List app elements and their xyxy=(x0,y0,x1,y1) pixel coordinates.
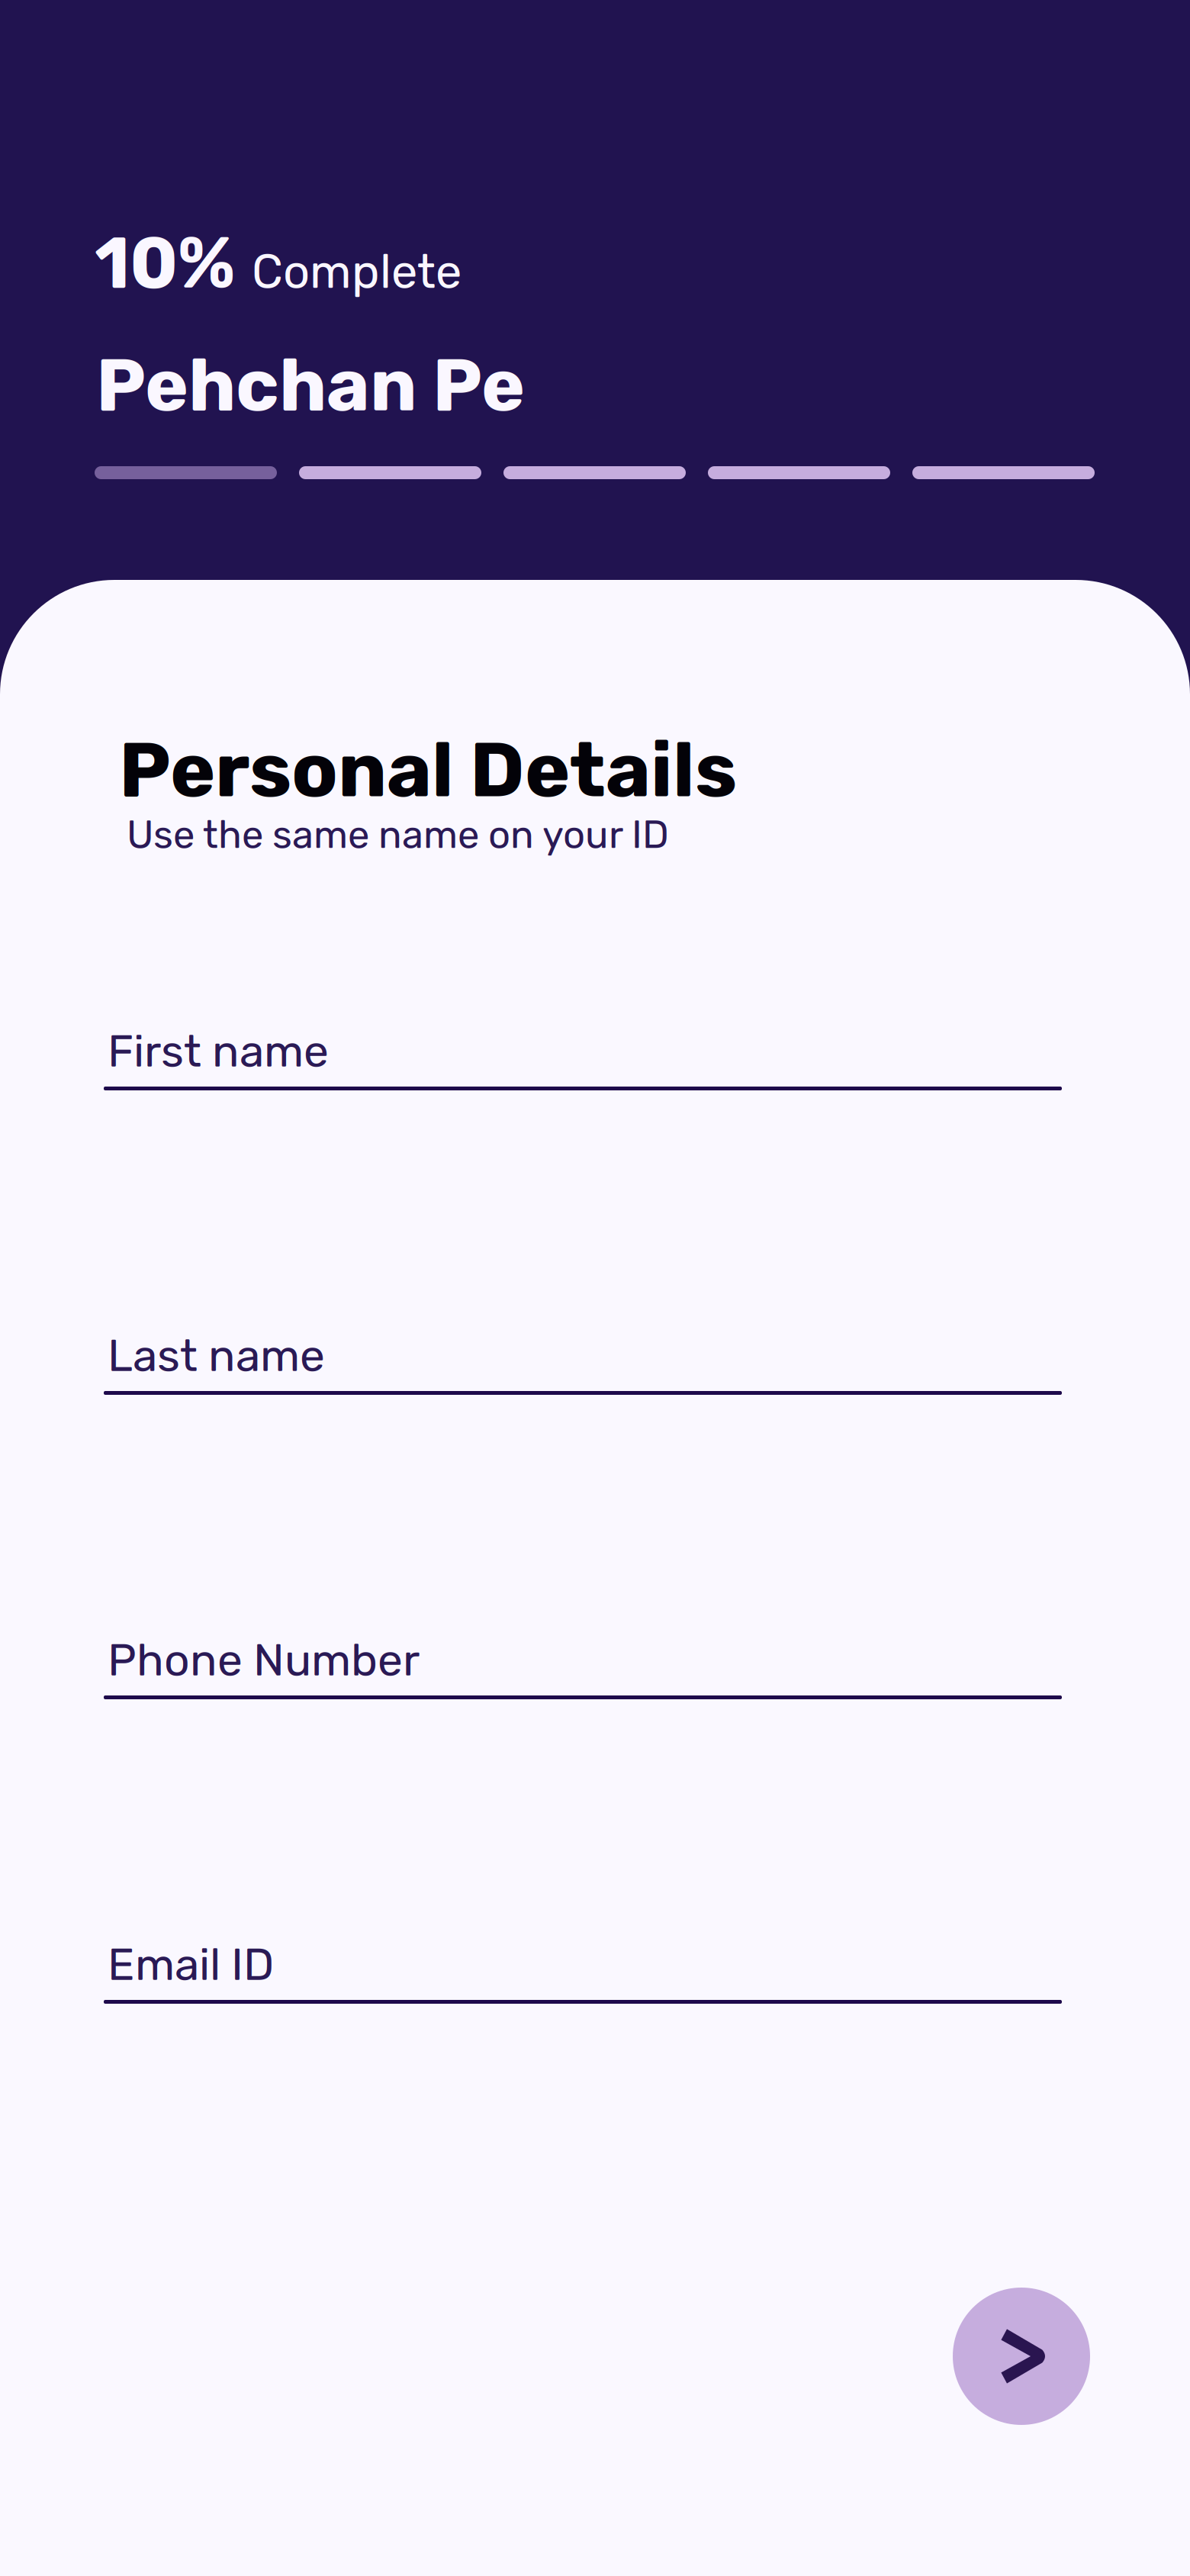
staticText: 10% xyxy=(95,221,235,306)
staticText: Last name xyxy=(108,1329,325,1382)
staticText: Email ID xyxy=(108,1938,274,1991)
staticText: Complete xyxy=(252,244,462,300)
staticText: Use the same name on your ID xyxy=(127,812,669,858)
button[interactable]: Next xyxy=(953,2288,1090,2425)
staticText: First name xyxy=(108,1025,329,1078)
button[interactable]: Phone Number xyxy=(104,1613,1062,1701)
staticText: Personal Details xyxy=(119,725,737,815)
button[interactable]: Last name xyxy=(104,1309,1062,1396)
button[interactable]: First name xyxy=(104,1004,1062,1092)
button[interactable]: Email ID xyxy=(104,1918,1062,2005)
staticText: Pehchan Pe xyxy=(96,342,525,429)
staticText: Phone Number xyxy=(108,1634,420,1687)
